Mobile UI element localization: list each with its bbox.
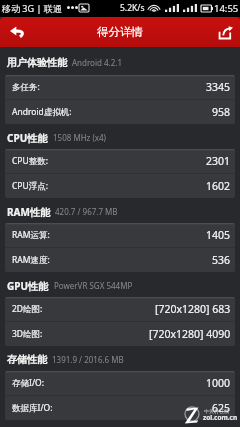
button[interactable]: Share xyxy=(208,17,240,47)
staticText: 1508 MHz (x4) xyxy=(53,132,107,143)
staticText: 存储性能 xyxy=(7,353,47,366)
staticText: 1391.9 / 2016.6 MB xyxy=(52,354,124,365)
button[interactable]: Android虚拟机: xyxy=(5,100,235,124)
staticText: 2D绘图: xyxy=(12,303,43,315)
staticText: 1602 xyxy=(206,179,231,193)
staticText: [720x1280] 4090 xyxy=(149,327,231,341)
staticText: 3345 xyxy=(206,80,231,94)
staticText: 移动 3G | 联通 xyxy=(2,2,62,14)
staticText: 958 xyxy=(212,105,231,119)
staticText: RAM运算: xyxy=(12,229,50,241)
button[interactable]: RAM运算: xyxy=(5,223,235,247)
staticText: 5.2K/s xyxy=(120,2,145,14)
staticText: 得分详情 xyxy=(97,25,143,39)
button[interactable]: Back xyxy=(0,17,36,47)
staticText: 14:55 xyxy=(214,2,239,15)
staticText: CPU性能 xyxy=(7,131,48,145)
staticText: 2301 xyxy=(206,154,231,168)
button[interactable]: CPU整数: xyxy=(5,149,235,173)
staticText: 中关村在线 xyxy=(204,408,229,414)
staticText: 625 xyxy=(212,401,231,415)
button[interactable]: 存储I/O: xyxy=(5,371,235,395)
staticText: zol.com.cn xyxy=(203,413,238,422)
button[interactable]: 3D绘图: xyxy=(5,322,235,346)
button[interactable]: 2D绘图: xyxy=(5,297,235,321)
staticText: 1405 xyxy=(206,228,231,242)
staticText: CPU整数: xyxy=(12,155,49,167)
button[interactable]: RAM速度: xyxy=(5,248,235,272)
staticText: PowerVR SGX 544MP xyxy=(54,280,133,291)
staticText: 存储I/O: xyxy=(12,377,44,389)
staticText: 多任务: xyxy=(12,81,40,93)
button[interactable]: 数据库I/O: xyxy=(5,396,235,420)
staticText: Android 4.2.1 xyxy=(72,57,123,68)
staticText: CPU浮点: xyxy=(12,180,49,192)
staticText: 420.7 / 967.7 MB xyxy=(55,206,118,217)
button[interactable]: CPU浮点: xyxy=(5,174,235,198)
staticText: 3D绘图: xyxy=(12,328,43,340)
staticText: 数据库I/O: xyxy=(12,402,53,414)
staticText: RAM速度: xyxy=(12,254,50,266)
staticText: 536 xyxy=(212,253,231,267)
staticText: RAM性能 xyxy=(7,205,50,219)
staticText: GPU性能 xyxy=(7,279,49,293)
button[interactable]: 多任务: xyxy=(5,75,235,99)
staticText: [720x1280] 683 xyxy=(155,302,231,316)
staticText: 用户体验性能 xyxy=(7,56,67,69)
staticText: 1000 xyxy=(206,376,231,390)
staticText: Android虚拟机: xyxy=(12,106,72,118)
